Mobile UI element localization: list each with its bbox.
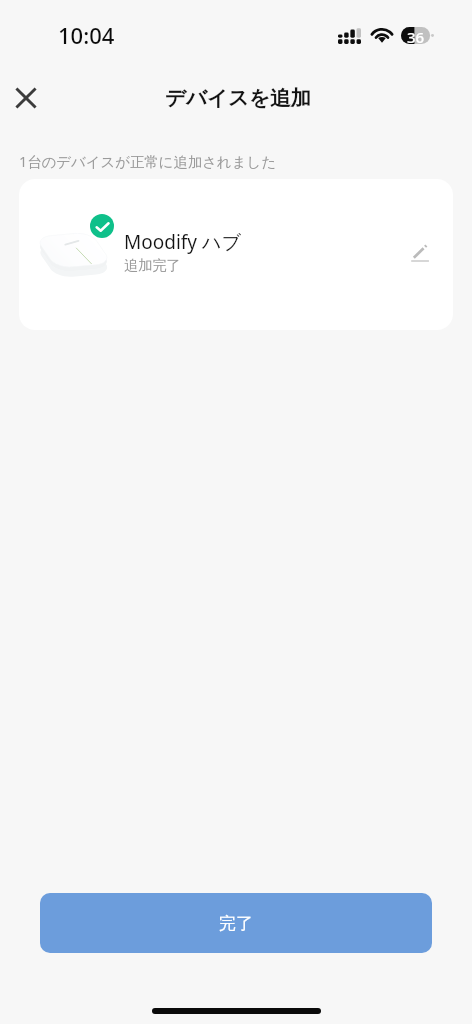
staticText: 追加完了 <box>124 256 181 274</box>
button[interactable]: Close <box>2 74 50 122</box>
staticText: 完了 <box>219 913 253 934</box>
button[interactable]: Moodify ハブ <box>19 179 453 330</box>
staticText: 1台のデバイスが正常に追加されました <box>19 152 276 172</box>
staticText: デバイスを追加 <box>165 85 311 111</box>
button[interactable]: 完了 <box>40 893 432 953</box>
staticText: Moodify ハブ <box>124 229 241 255</box>
button[interactable]: Edit <box>399 233 443 277</box>
staticText: 10:04 <box>58 20 115 50</box>
staticText: 36 <box>407 27 425 44</box>
